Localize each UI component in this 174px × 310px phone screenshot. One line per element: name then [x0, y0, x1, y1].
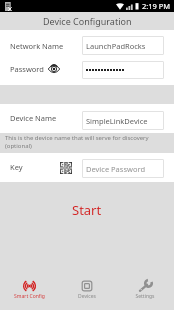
staticText: LaunchPadRocks: [86, 41, 146, 51]
staticText: Network Name: [10, 41, 64, 51]
button[interactable]: Show password: [47, 62, 60, 75]
staticText: 2:19 PM: [142, 1, 171, 11]
staticText: Start: [72, 201, 102, 219]
button[interactable]: Devices: [58, 270, 116, 310]
button[interactable]: Start: [0, 197, 174, 223]
staticText: Password: [10, 64, 44, 74]
button[interactable]: Device Password: [82, 159, 164, 178]
button[interactable]: Settings: [116, 270, 174, 310]
staticText: Settings: [135, 293, 155, 300]
staticText: Device Configuration: [43, 15, 132, 27]
button[interactable]: Scan QR code: [58, 160, 74, 176]
staticText: Device Name: [10, 113, 57, 123]
staticText: SimpleLinkDevice: [86, 116, 148, 126]
button[interactable]: Smart Config: [0, 270, 58, 310]
button[interactable]: SimpleLinkDevice: [82, 111, 164, 130]
staticText: This is the device name that will serve …: [5, 134, 149, 150]
staticText: Smart Config: [14, 293, 45, 300]
staticText: Key: [10, 162, 23, 172]
staticText: Device Password: [86, 164, 146, 174]
staticText: Devices: [78, 293, 96, 300]
button[interactable]: [82, 61, 164, 79]
button[interactable]: LaunchPadRocks: [82, 36, 164, 55]
